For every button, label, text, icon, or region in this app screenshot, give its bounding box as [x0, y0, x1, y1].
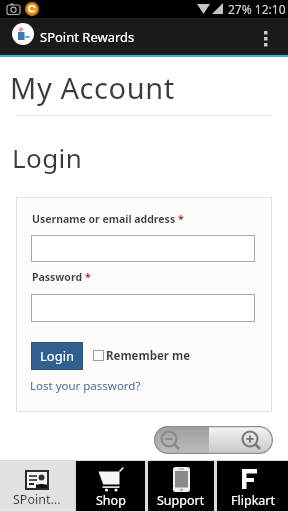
staticText: Login [12, 140, 83, 175]
button[interactable] [154, 426, 209, 454]
staticText: Username or email address [32, 212, 178, 226]
staticText: 27% 12:10 [228, 1, 286, 17]
staticText: Lost your password? [30, 378, 141, 394]
staticText: Remember me [106, 348, 191, 364]
staticText: SPoint Rewards [40, 28, 135, 46]
staticText: My Account [10, 68, 175, 107]
staticText: * [178, 212, 184, 226]
staticText: Password [32, 270, 85, 284]
staticText: Login [40, 347, 75, 365]
button[interactable]: Shop [76, 461, 145, 511]
button[interactable]: Support [148, 461, 214, 511]
button[interactable]: Flipkart [217, 461, 288, 511]
button[interactable] [252, 18, 282, 55]
button[interactable]: Login [31, 342, 83, 370]
staticText: SPoint... [13, 491, 61, 508]
staticText: Flipkart [231, 492, 275, 509]
staticText: * [85, 270, 91, 284]
staticText: Support [157, 492, 205, 509]
staticText: Shop [96, 492, 126, 509]
button[interactable]: SPoint... [0, 461, 74, 511]
button[interactable]: Lost your password? [30, 378, 141, 394]
button[interactable] [93, 350, 104, 361]
button[interactable] [209, 426, 273, 454]
